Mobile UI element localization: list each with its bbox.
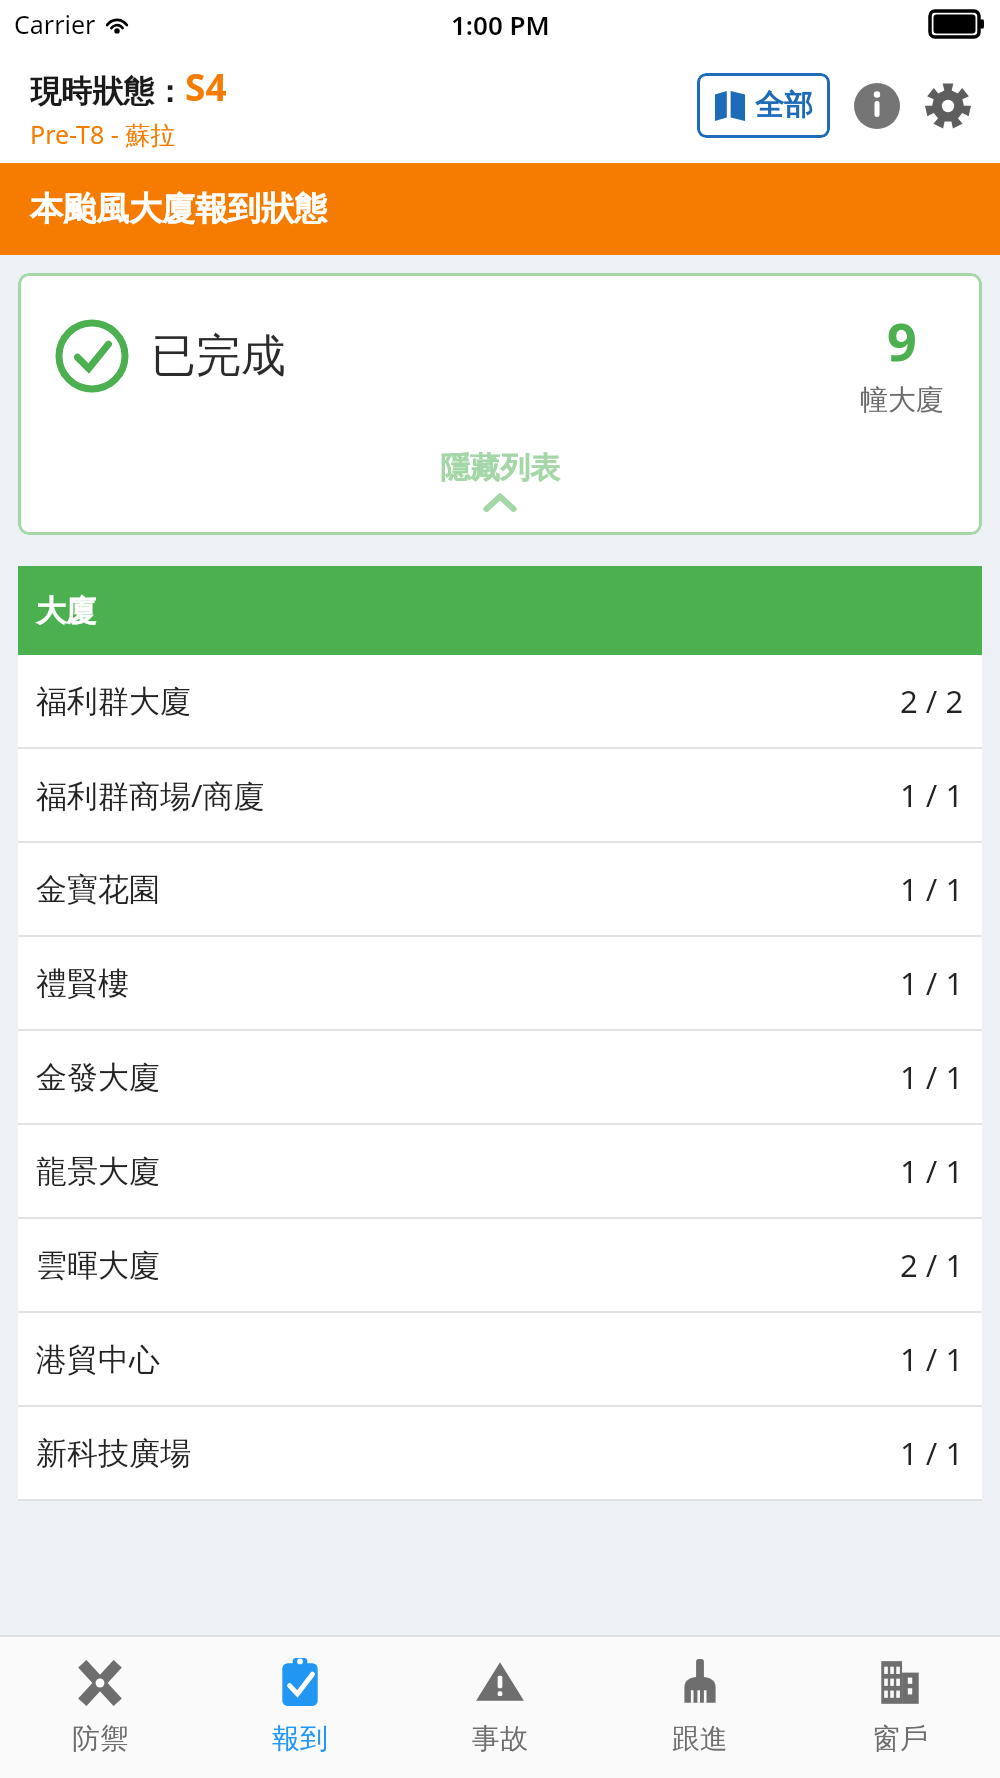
button[interactable]: 跟進	[600, 1637, 800, 1778]
button[interactable]: 雲暉大廈	[18, 1219, 982, 1311]
staticText: 9	[887, 305, 917, 376]
staticText: 1 / 1	[900, 1432, 964, 1474]
staticText: 已完成	[151, 328, 286, 385]
staticText: 跟進	[672, 1721, 728, 1756]
button[interactable]: 防禦	[0, 1637, 200, 1778]
staticText: 港貿中心	[36, 1340, 160, 1379]
staticText: Carrier	[14, 7, 96, 41]
staticText: 1:00 PM	[451, 7, 550, 42]
staticText: 窗戶	[872, 1721, 928, 1756]
staticText: 全部	[755, 87, 813, 124]
staticText: 金寶花園	[36, 870, 160, 909]
staticText: 雲暉大廈	[36, 1246, 160, 1285]
button[interactable]: 已完成	[18, 273, 982, 535]
staticText: 1 / 1	[900, 962, 964, 1004]
staticText: 1 / 1	[900, 1338, 964, 1380]
staticText: 龍景大廈	[36, 1152, 160, 1191]
staticText: 隱藏列表	[440, 449, 560, 487]
staticText: 福利群大廈	[36, 682, 191, 721]
staticText: 事故	[472, 1721, 528, 1756]
button[interactable]: 全部	[697, 73, 830, 138]
button[interactable]: 港貿中心	[18, 1313, 982, 1405]
staticText: 金發大廈	[36, 1058, 160, 1097]
staticText: 1 / 1	[900, 1150, 964, 1192]
staticText: 1 / 1	[900, 868, 964, 910]
staticText: 幢大廈	[860, 382, 944, 417]
staticText: 報到	[272, 1721, 328, 1756]
staticText: 防禦	[72, 1721, 128, 1756]
button[interactable]: 金寶花園	[18, 843, 982, 935]
staticText: 福利群商場/商廈	[36, 774, 265, 816]
staticText: 禮賢樓	[36, 964, 129, 1003]
staticText: Pre-T8 - 蘇拉	[30, 117, 176, 151]
button[interactable]: 新科技廣場	[18, 1407, 982, 1499]
button[interactable]: 事故	[400, 1637, 600, 1778]
staticText: 1 / 1	[900, 1056, 964, 1098]
button[interactable]: 禮賢樓	[18, 937, 982, 1029]
staticText: 本颱風大廈報到狀態	[30, 188, 327, 230]
staticText: 新科技廣場	[36, 1434, 191, 1473]
staticText: 2 / 2	[900, 680, 964, 722]
button[interactable]: 金發大廈	[18, 1031, 982, 1123]
button[interactable]: 報到	[200, 1637, 400, 1778]
button[interactable]: Settings	[922, 80, 974, 132]
staticText: 現時狀態：	[30, 72, 185, 111]
button[interactable]: 龍景大廈	[18, 1125, 982, 1217]
button[interactable]: Information	[852, 81, 902, 131]
staticText: 1 / 1	[900, 774, 964, 816]
staticText: 2 / 1	[900, 1244, 964, 1286]
button[interactable]: 福利群商場/商廈	[18, 749, 982, 841]
staticText: S4	[185, 61, 227, 111]
staticText: 大廈	[36, 592, 96, 630]
button[interactable]: 福利群大廈	[18, 655, 982, 747]
button[interactable]: 窗戶	[800, 1637, 1000, 1778]
